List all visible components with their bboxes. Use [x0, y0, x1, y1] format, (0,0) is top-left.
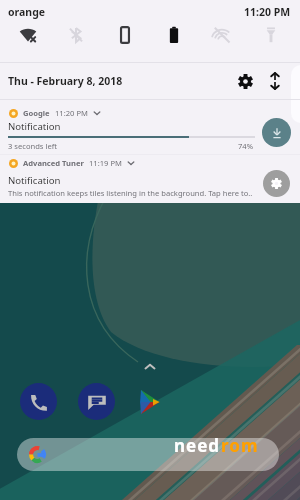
button[interactable]	[17, 438, 279, 471]
staticText: Notification	[8, 120, 61, 133]
staticText: Thu - February 8, 2018	[8, 74, 123, 88]
button[interactable]: Notification settings	[263, 170, 290, 197]
staticText: This notification keeps tiles listening …	[8, 188, 253, 198]
button[interactable]: Flashlight	[260, 24, 282, 46]
staticText: 74%	[238, 141, 253, 151]
other: Open app drawer	[141, 358, 159, 376]
staticText: Advanced Tuner	[23, 158, 84, 168]
button[interactable]: Download	[262, 118, 291, 147]
button[interactable]: Phone	[20, 383, 57, 420]
staticText: need	[174, 434, 221, 457]
button[interactable]	[0, 155, 300, 203]
staticText: Notification	[8, 174, 61, 187]
staticText: rom	[221, 434, 259, 457]
button[interactable]: Expand	[264, 70, 286, 92]
button[interactable]: Wi-Fi off	[17, 24, 39, 46]
button[interactable]	[0, 100, 300, 154]
button[interactable]: Messages	[78, 383, 115, 420]
staticText: 11:19 PM	[89, 158, 122, 168]
staticText: 11:20 PM	[244, 5, 291, 19]
button[interactable]: Settings	[234, 70, 256, 92]
staticText: orange	[8, 5, 46, 19]
button[interactable]: Bluetooth off	[65, 24, 87, 46]
button[interactable]: Battery saver	[163, 24, 185, 46]
staticText: Google	[23, 108, 50, 118]
staticText: 3 seconds left	[8, 141, 58, 151]
button[interactable]: Cast off	[211, 24, 233, 46]
button[interactable]: Auto rotate	[114, 24, 136, 46]
staticText: 11:20 PM	[55, 108, 88, 118]
button[interactable]: Play Store	[131, 383, 168, 420]
